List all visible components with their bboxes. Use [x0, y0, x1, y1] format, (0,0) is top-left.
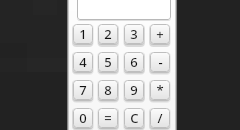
- staticText: C: [130, 109, 139, 127]
- button[interactable]: /: [150, 108, 170, 128]
- button[interactable]: 6: [124, 52, 144, 72]
- staticText: 2: [104, 25, 112, 43]
- staticText: 6: [130, 53, 138, 71]
- button[interactable]: 7: [73, 80, 93, 100]
- staticText: 9: [130, 81, 138, 99]
- button[interactable]: -: [150, 52, 170, 72]
- staticText: *: [156, 81, 164, 99]
- staticText: -: [158, 53, 163, 71]
- button[interactable]: *: [150, 80, 170, 100]
- staticText: +: [156, 25, 164, 43]
- staticText: 1: [79, 25, 87, 43]
- staticText: 7: [79, 81, 87, 99]
- button[interactable]: 2: [98, 24, 118, 44]
- staticText: 4: [79, 53, 87, 71]
- button[interactable]: 9: [124, 80, 144, 100]
- button[interactable]: C: [124, 108, 144, 128]
- staticText: 5: [104, 53, 112, 71]
- button[interactable]: 5: [98, 52, 118, 72]
- staticText: =: [104, 109, 112, 127]
- staticText: 0: [79, 109, 87, 127]
- staticText: /: [157, 109, 163, 127]
- button[interactable]: 4: [73, 52, 93, 72]
- button[interactable]: 1: [73, 24, 93, 44]
- button[interactable]: Calculator display: [77, 0, 171, 20]
- button[interactable]: 8: [98, 80, 118, 100]
- staticText: 8: [104, 81, 112, 99]
- button[interactable]: =: [98, 108, 118, 128]
- button[interactable]: 3: [124, 24, 144, 44]
- button[interactable]: 0: [73, 108, 93, 128]
- staticText: 3: [130, 25, 138, 43]
- button[interactable]: +: [150, 24, 170, 44]
